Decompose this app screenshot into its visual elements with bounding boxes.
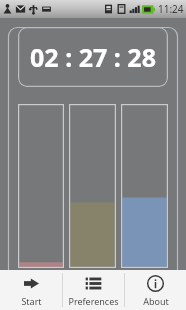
staticText: Start — [21, 295, 42, 307]
button[interactable] — [69, 104, 116, 268]
button[interactable]: Preferences — [63, 270, 124, 310]
staticText: 02 : 27 : 28 — [30, 40, 156, 74]
button[interactable]: Start — [0, 270, 62, 310]
button[interactable] — [18, 104, 64, 268]
button[interactable]: About — [125, 270, 186, 310]
staticText: About — [143, 295, 169, 307]
staticText: 11:24 — [158, 2, 184, 16]
button[interactable] — [121, 104, 168, 268]
staticText: Preferences — [68, 295, 119, 307]
button[interactable]: 02 : 27 : 28 — [18, 27, 168, 87]
